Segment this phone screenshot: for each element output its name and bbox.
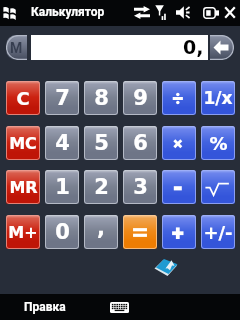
staticText: 0, [183,36,204,58]
button[interactable]: Plus [162,215,196,249]
staticText: % [209,133,228,154]
staticText: 4 [55,131,70,155]
button[interactable]: 2 [84,170,118,204]
button[interactable]: 6 [123,126,157,160]
button[interactable]: 0 [45,215,79,249]
button[interactable]: 5 [84,126,118,160]
button[interactable]: MC [6,126,40,160]
button[interactable]: 9 [123,81,157,115]
staticText: MC [9,134,37,153]
staticText: 3 [133,175,148,199]
button[interactable]: 3 [123,170,157,204]
staticText: 7 [55,86,70,110]
staticText: C [16,88,30,109]
button[interactable]: , [84,215,118,249]
staticText: 6 [133,131,148,155]
staticText: 2 [94,175,109,199]
staticText: M+ [8,223,38,242]
staticText: 1 [55,175,70,199]
button[interactable]: Equals [123,215,157,249]
button[interactable]: 4 [45,126,79,160]
button[interactable]: MR [6,170,40,204]
button[interactable]: Keyboard [102,296,136,318]
button[interactable]: Square root [201,170,235,204]
button[interactable]: 1/x [201,81,235,115]
button[interactable]: Minus [162,170,196,204]
button[interactable]: 1 [45,170,79,204]
staticText: 0 [55,220,70,244]
button[interactable]: +/- [201,215,235,249]
staticText: , [97,216,105,240]
staticText: 8 [94,86,109,110]
staticText: MR [9,178,38,197]
button[interactable]: Close [224,6,236,19]
button[interactable]: % [201,126,235,160]
button[interactable]: M+ [6,215,40,249]
staticText: M [10,40,23,56]
button[interactable]: 8 [84,81,118,115]
button[interactable]: Multiply [162,126,196,160]
button[interactable]: Memory [6,35,27,60]
button[interactable]: Divide [162,81,196,115]
button[interactable]: 7 [45,81,79,115]
staticText: Калькулятор [31,5,105,19]
staticText: 5 [94,131,109,155]
staticText: +/- [203,222,233,243]
staticText: 9 [133,86,148,110]
staticText: Правка [24,300,66,314]
button[interactable]: Backspace [210,35,234,60]
button[interactable]: Правка [0,294,95,320]
button[interactable]: C [6,81,40,115]
staticText: 1/x [203,88,233,108]
